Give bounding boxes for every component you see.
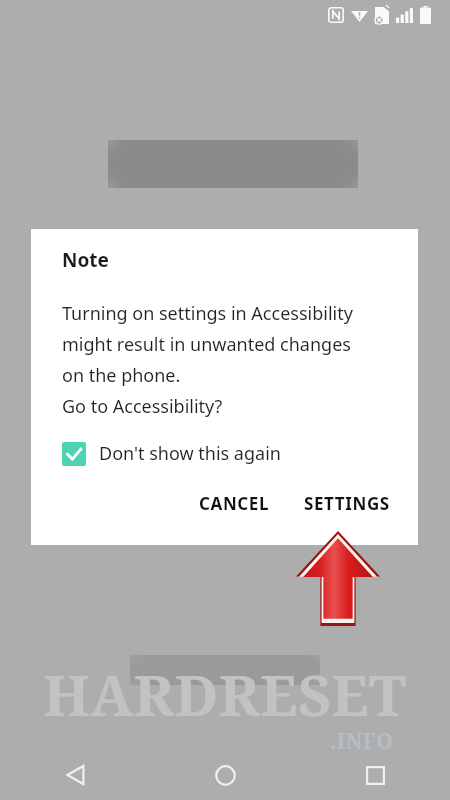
staticText: .INFO bbox=[330, 727, 394, 756]
button[interactable]: Back bbox=[0, 750, 150, 800]
staticText: Turning on settings in Accessibility mig… bbox=[62, 301, 353, 419]
button[interactable]: Recent apps bbox=[300, 750, 450, 800]
staticText: Note bbox=[62, 247, 109, 273]
button[interactable]: CANCEL bbox=[187, 484, 282, 523]
staticText: HARDRESET bbox=[0, 655, 450, 733]
button[interactable]: Home bbox=[150, 750, 300, 800]
button[interactable]: Don't show this again bbox=[62, 441, 281, 466]
staticText: SETTINGS bbox=[304, 492, 390, 515]
staticText: Don't show this again bbox=[99, 441, 281, 466]
button[interactable]: SETTINGS bbox=[292, 484, 402, 523]
staticText: CANCEL bbox=[199, 492, 270, 515]
